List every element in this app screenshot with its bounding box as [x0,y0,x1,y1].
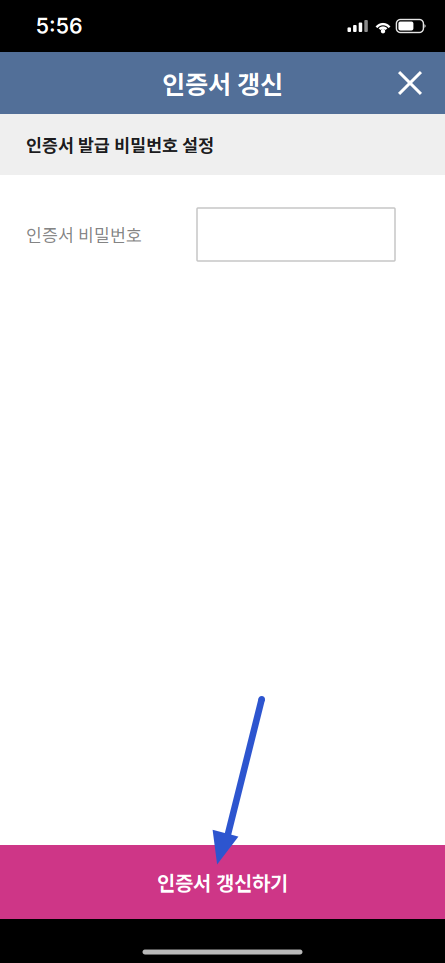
staticText: 인증서 갱신하기 [157,867,288,896]
staticText: 인증서 발급 비밀번호 설정 [26,132,214,157]
button[interactable]: 인증서 비밀번호 입력 [197,208,395,261]
staticText: 5:56 [36,13,83,39]
staticText: 인증서 갱신 [162,65,283,101]
button[interactable]: 인증서 갱신하기 [0,845,445,919]
staticText: 인증서 비밀번호 [26,222,142,247]
button[interactable]: Close [387,60,433,106]
